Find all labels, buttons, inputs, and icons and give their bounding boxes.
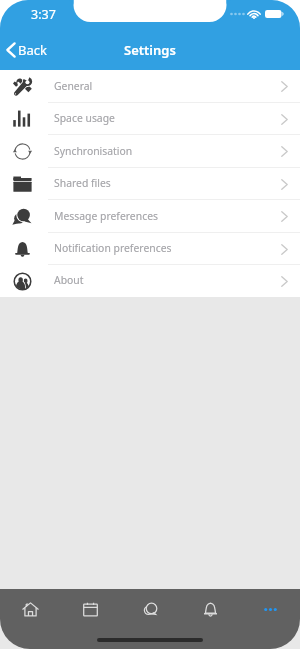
staticText: 3:37 [31, 6, 56, 23]
button[interactable]: Back [0, 35, 57, 65]
button[interactable]: Space usage [0, 103, 300, 135]
button[interactable]: Home [0, 589, 60, 629]
button[interactable]: Notification preferences [0, 233, 300, 265]
staticText: About [54, 273, 84, 287]
button[interactable]: Message preferences [0, 200, 300, 233]
staticText: Synchronisation [54, 144, 133, 158]
staticText: General [54, 79, 93, 93]
staticText: Message preferences [54, 209, 158, 223]
button[interactable]: General [0, 70, 300, 103]
button[interactable]: Shared files [0, 168, 300, 200]
button[interactable]: Synchronisation [0, 135, 300, 168]
staticText: Settings [124, 41, 176, 59]
button[interactable]: Calendar [60, 589, 120, 629]
button[interactable]: More [240, 589, 300, 629]
button[interactable]: Messages [120, 589, 180, 629]
staticText: Notification preferences [54, 241, 172, 255]
staticText: Shared files [54, 176, 111, 190]
staticText: Space usage [54, 111, 115, 125]
button[interactable]: Notifications [180, 589, 240, 629]
button[interactable]: About [0, 265, 300, 297]
staticText: Back [18, 41, 47, 59]
